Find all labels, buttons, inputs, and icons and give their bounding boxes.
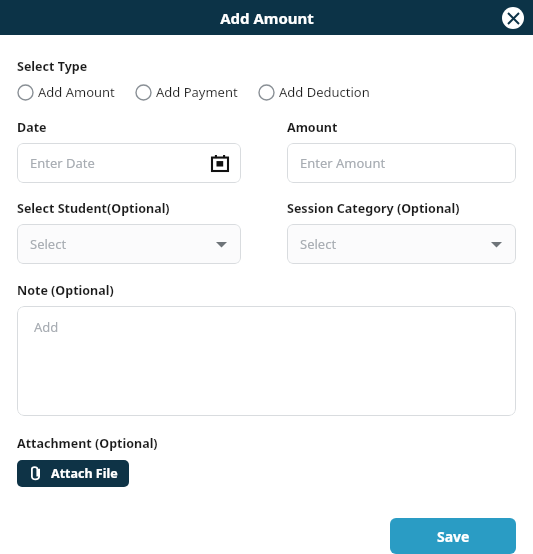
- staticText: Add Amount: [220, 8, 314, 28]
- staticText: Select Student(Optional): [17, 200, 170, 217]
- staticText: Session Category (Optional): [287, 200, 460, 217]
- button[interactable]: Attach File: [17, 460, 129, 487]
- button[interactable]: Add: [17, 306, 516, 416]
- button[interactable]: Enter Date: [17, 143, 241, 183]
- button[interactable]: Add Deduction: [258, 83, 370, 101]
- staticText: Select: [30, 235, 67, 253]
- staticText: Amount: [287, 119, 338, 136]
- staticText: Save: [437, 527, 470, 546]
- staticText: Attach File: [51, 465, 118, 482]
- button[interactable]: Close: [502, 7, 524, 29]
- button[interactable]: Select: [17, 224, 241, 264]
- button[interactable]: Enter Amount: [287, 143, 516, 183]
- staticText: Select: [300, 235, 337, 253]
- staticText: Enter Amount: [300, 154, 386, 172]
- staticText: Attachment (Optional): [17, 435, 158, 452]
- staticText: Add Deduction: [279, 83, 370, 101]
- button[interactable]: Select: [287, 224, 516, 264]
- staticText: Note (Optional): [17, 282, 114, 299]
- button[interactable]: Save: [390, 518, 516, 554]
- staticText: Add: [34, 318, 59, 336]
- staticText: Add Payment: [156, 83, 238, 101]
- button[interactable]: Add Payment: [135, 83, 238, 101]
- staticText: Date: [17, 119, 47, 136]
- staticText: Add Amount: [38, 83, 115, 101]
- staticText: Select Type: [17, 58, 88, 75]
- staticText: Enter Date: [30, 154, 95, 172]
- button[interactable]: Add Amount: [17, 83, 115, 101]
